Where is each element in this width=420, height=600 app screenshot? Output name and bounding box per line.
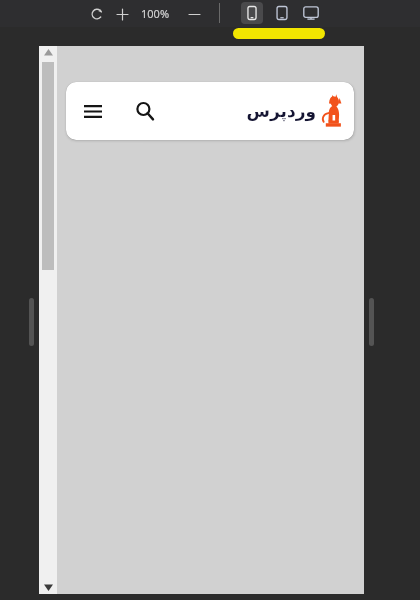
button[interactable]: WordPress Persian home <box>246 94 354 128</box>
button[interactable]: Search <box>128 94 162 128</box>
staticText: وردپرس <box>246 101 316 121</box>
button[interactable]: Menu <box>76 94 110 128</box>
button[interactable]: Resize viewport <box>29 298 34 346</box>
button[interactable]: Desktop view <box>300 2 322 24</box>
button[interactable]: Zoom out <box>185 5 203 23</box>
button[interactable]: Zoom in <box>113 5 131 23</box>
staticText: 100% <box>141 6 170 21</box>
button[interactable]: Phone view <box>241 2 263 24</box>
button[interactable]: Reset zoom <box>88 5 106 23</box>
button[interactable]: Resize viewport <box>369 298 374 346</box>
button[interactable]: Width indicator <box>233 28 325 39</box>
button[interactable]: Tablet view <box>271 2 293 24</box>
